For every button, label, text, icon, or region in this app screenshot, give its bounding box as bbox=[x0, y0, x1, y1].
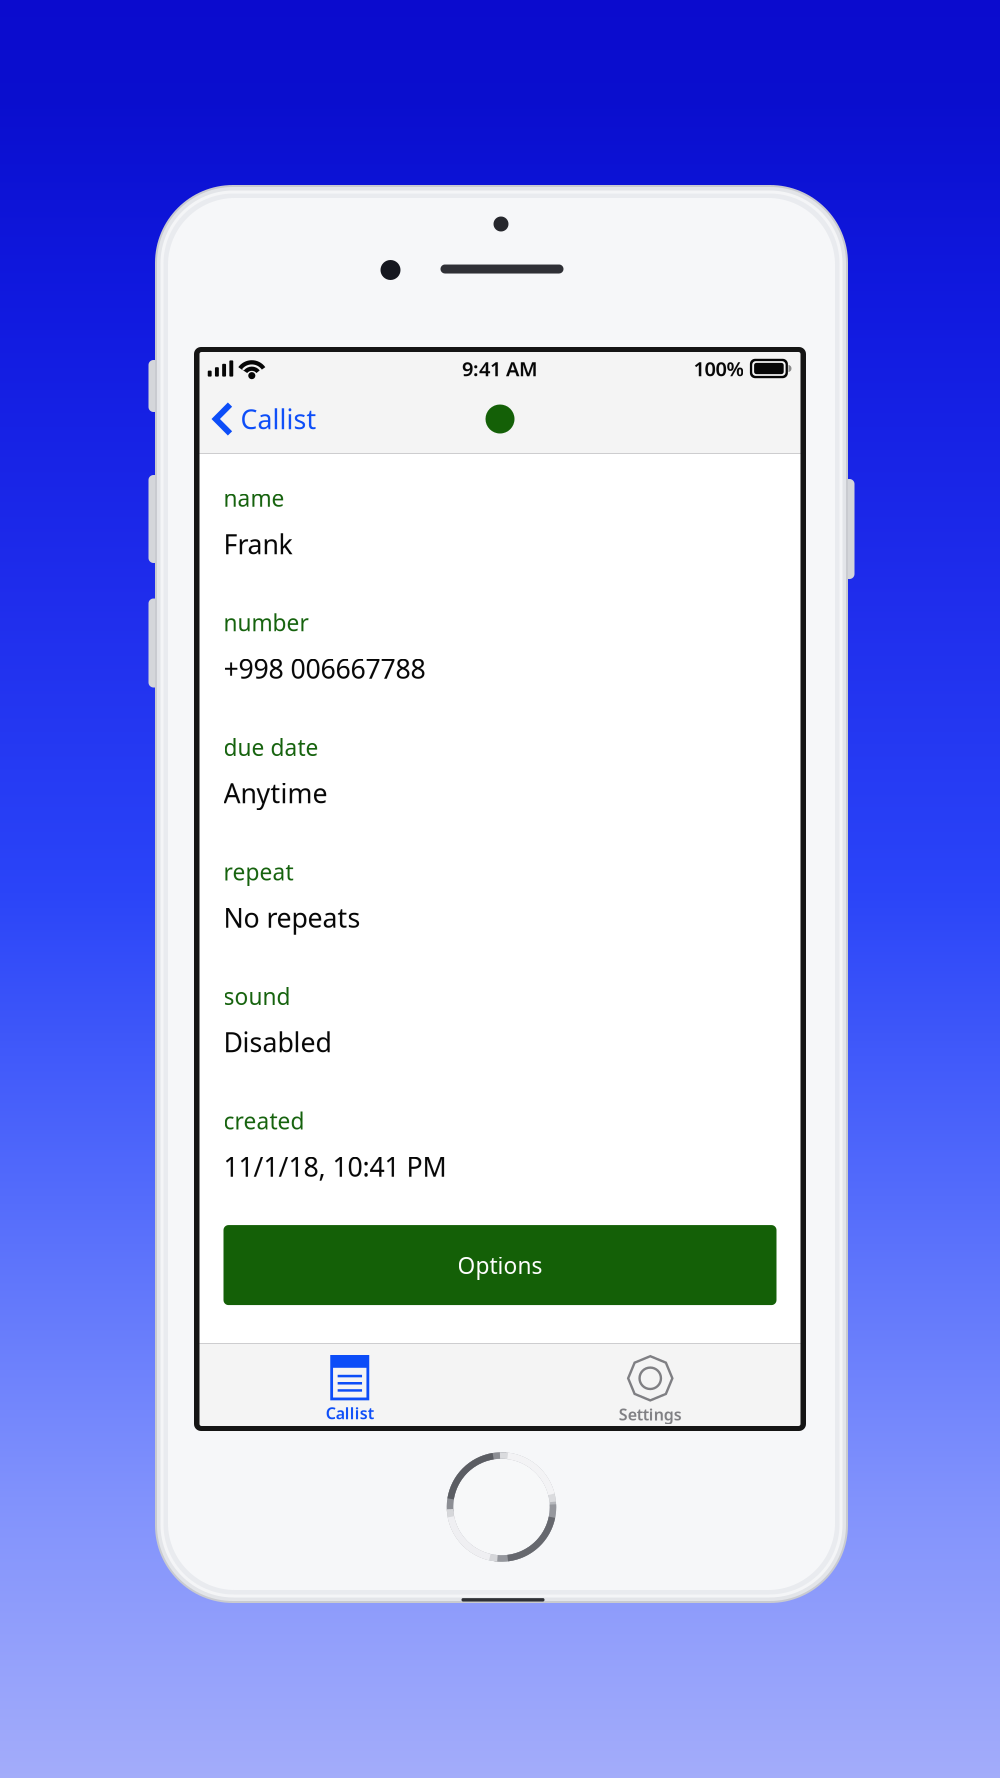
staticText: repeat bbox=[223, 856, 293, 887]
staticText: due date bbox=[223, 732, 318, 762]
button[interactable]: Settings bbox=[500, 1344, 800, 1426]
staticText: Anytime bbox=[223, 775, 327, 810]
staticText: Callist bbox=[240, 401, 316, 437]
staticText: Disabled bbox=[223, 1024, 331, 1060]
staticText: sound bbox=[223, 981, 290, 1011]
staticText: No repeats bbox=[223, 900, 360, 935]
button[interactable]: Options bbox=[223, 1225, 776, 1305]
staticText: Options bbox=[457, 1250, 542, 1280]
button[interactable]: Callist bbox=[199, 1344, 500, 1426]
staticText: +998 006667788 bbox=[223, 651, 425, 686]
staticText: Callist bbox=[326, 1402, 374, 1423]
staticText: Frank bbox=[223, 526, 292, 561]
staticText: created bbox=[223, 1106, 304, 1136]
staticText: 11/1/18, 10:41 PM bbox=[223, 1149, 446, 1184]
staticText: Settings bbox=[619, 1404, 682, 1425]
staticText: name bbox=[223, 483, 284, 513]
staticText: number bbox=[223, 607, 308, 638]
staticText: 9:41 AM bbox=[462, 355, 538, 382]
staticText: 100% bbox=[693, 355, 744, 382]
button[interactable]: Callist bbox=[199, 393, 330, 445]
